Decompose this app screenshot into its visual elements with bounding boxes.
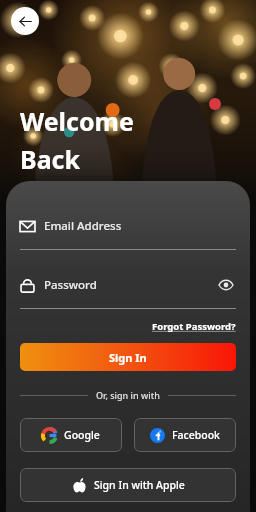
staticText: Or, sign in with — [96, 389, 160, 401]
staticText: Back — [20, 142, 81, 176]
button[interactable]: Sign In — [20, 343, 236, 371]
staticText: Forgot Password? — [152, 320, 236, 333]
button[interactable]: Email Address — [20, 214, 236, 238]
button[interactable]: Password — [20, 273, 236, 297]
button[interactable]: Forgot Password? — [152, 320, 236, 333]
staticText: Google — [64, 428, 100, 442]
staticText: Email Address — [44, 218, 122, 234]
button[interactable]: Back — [11, 7, 39, 35]
button[interactable]: Sign In with Apple — [20, 468, 236, 502]
button[interactable]: Google — [20, 418, 122, 452]
staticText: Sign In with Apple — [94, 478, 185, 492]
button[interactable]: Show password — [216, 275, 236, 295]
staticText: Sign In — [109, 350, 147, 365]
staticText: Facebook — [172, 428, 220, 442]
button[interactable]: Facebook — [134, 418, 236, 452]
staticText: Welcome — [20, 104, 134, 138]
staticText: Password — [44, 277, 97, 293]
